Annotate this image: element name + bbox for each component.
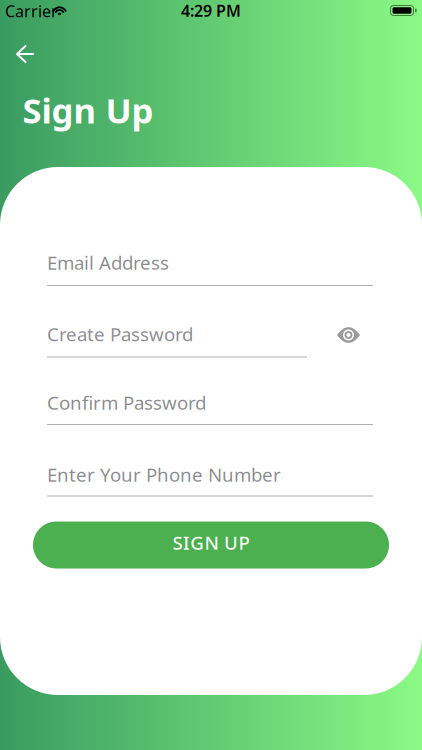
button[interactable]: Email Address: [47, 250, 373, 286]
staticText: Carrier: [5, 0, 58, 22]
button[interactable]: Enter Your Phone Number: [47, 462, 373, 496]
staticText: Sign Up: [22, 87, 153, 133]
staticText: Confirm Password: [47, 390, 206, 415]
staticText: 4:29 PM: [181, 0, 241, 21]
button[interactable]: Show password: [331, 321, 366, 348]
button[interactable]: Create Password: [47, 321, 307, 357]
staticText: Email Address: [47, 250, 169, 275]
staticText: Enter Your Phone Number: [47, 462, 281, 487]
button[interactable]: Back: [9, 38, 41, 70]
button[interactable]: Confirm Password: [47, 390, 373, 425]
button[interactable]: SIGN UP: [33, 521, 389, 568]
staticText: Create Password: [47, 321, 193, 346]
staticText: SIGN UP: [173, 530, 249, 555]
